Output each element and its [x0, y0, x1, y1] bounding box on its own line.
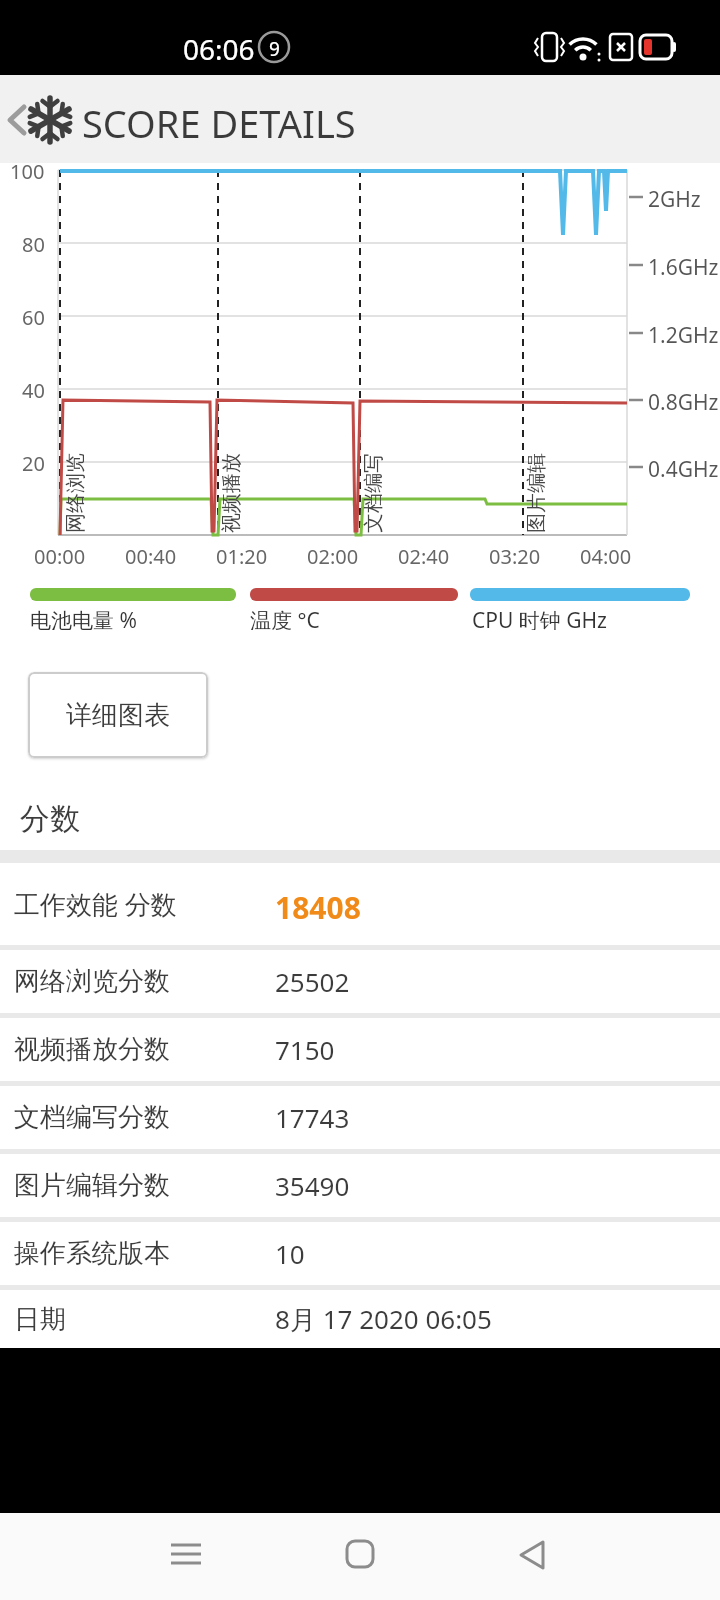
button[interactable]: 操作系统版本 [0, 1222, 720, 1285]
staticText: 03:20 [489, 543, 541, 570]
staticText: CPU 时钟 GHz [472, 606, 607, 630]
staticText: SCORE DETAILS [82, 97, 356, 149]
staticText: 8月 17 2020 06:05 [275, 1301, 492, 1337]
staticText: 2GHz [648, 185, 701, 214]
staticText: 35490 [275, 1168, 350, 1203]
staticText: 电池电量 % [30, 606, 137, 630]
staticText: 9 [269, 36, 280, 62]
button[interactable] [0, 75, 78, 163]
staticText: 分数 [20, 800, 80, 838]
staticText: 0.4GHz [648, 455, 719, 484]
staticText: 01:20 [216, 543, 268, 570]
button[interactable] [171, 1541, 201, 1571]
staticText: 网络浏览 [63, 453, 87, 533]
staticText: 1.2GHz [648, 321, 719, 350]
staticText: 00:00 [34, 543, 86, 570]
staticText: 温度 °C [250, 606, 320, 630]
button[interactable]: 网络浏览分数 [0, 950, 720, 1013]
staticText: 文档编写 [361, 453, 385, 533]
button[interactable]: 工作效能 分数 [0, 863, 720, 945]
button[interactable]: 日期 [0, 1290, 720, 1348]
staticText: 25502 [275, 964, 350, 999]
button[interactable]: 文档编写分数 [0, 1086, 720, 1149]
staticText: 网络浏览分数 [14, 965, 170, 998]
staticText: 图片编辑分数 [14, 1169, 170, 1202]
staticText: 7150 [275, 1032, 335, 1067]
staticText: 20 [22, 450, 45, 474]
staticText: 18408 [275, 887, 361, 928]
staticText: 视频播放 [219, 453, 243, 533]
staticText: 60 [22, 304, 45, 328]
button[interactable] [347, 1541, 373, 1567]
staticText: 工作效能 分数 [14, 886, 177, 922]
staticText: 04:00 [580, 543, 632, 570]
staticText: 图片编辑 [524, 453, 548, 533]
staticText: 视频播放分数 [14, 1033, 170, 1066]
staticText: 40 [22, 377, 45, 401]
staticText: 文档编写分数 [14, 1101, 170, 1134]
staticText: 日期 [14, 1303, 66, 1336]
staticText: 00:40 [125, 543, 177, 570]
staticText: 80 [22, 231, 45, 255]
button[interactable] [519, 1541, 545, 1569]
staticText: 06:06 [183, 30, 255, 68]
button[interactable]: 图片编辑分数 [0, 1154, 720, 1217]
button[interactable]: 视频播放分数 [0, 1018, 720, 1081]
staticText: 1.6GHz [648, 253, 719, 282]
staticText: 17743 [275, 1100, 350, 1135]
staticText: 100 [10, 163, 45, 182]
staticText: 10 [275, 1236, 305, 1271]
staticText: 操作系统版本 [14, 1237, 170, 1270]
staticText: 02:00 [307, 543, 359, 570]
staticText: 详细图表 [66, 699, 170, 732]
staticText: 02:40 [398, 543, 450, 570]
staticText: 0.8GHz [648, 388, 719, 417]
button[interactable]: 详细图表 [28, 672, 208, 758]
